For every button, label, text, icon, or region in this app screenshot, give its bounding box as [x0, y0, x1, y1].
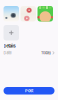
button[interactable]: Post: [3, 87, 54, 94]
staticText: Today: [41, 51, 51, 55]
button[interactable]: Date: [3, 51, 54, 55]
button[interactable]: Photo 1: [3, 6, 19, 21]
button[interactable]: Photo 2: [20, 6, 36, 21]
staticText: Post: [25, 88, 33, 93]
button[interactable]: Add photo: [3, 25, 19, 40]
staticText: Date: [3, 51, 11, 55]
staticText: Details: [3, 43, 15, 48]
button[interactable]: Photo 3: [37, 6, 53, 21]
